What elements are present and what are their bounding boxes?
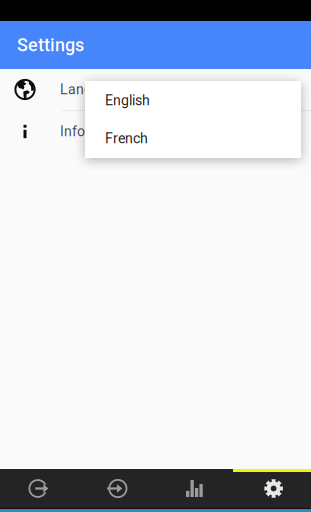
button[interactable]: Log in: [78, 469, 156, 508]
staticText: French: [105, 130, 148, 147]
button[interactable]: French: [85, 119, 301, 157]
staticText: Language: [60, 81, 123, 98]
button[interactable]: Log out: [0, 469, 78, 508]
button[interactable]: Statistics: [155, 469, 233, 508]
button[interactable]: Informations: [0, 111, 311, 152]
button[interactable]: Language: [0, 69, 311, 110]
staticText: English: [105, 92, 150, 109]
staticText: Settings: [17, 34, 84, 56]
button[interactable]: English: [85, 81, 301, 119]
staticText: Informations: [60, 123, 141, 140]
button[interactable]: Settings: [233, 469, 311, 508]
